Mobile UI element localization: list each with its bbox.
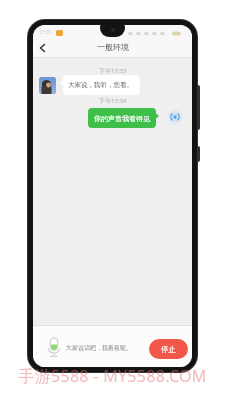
staticText: 大家说话吧，我看着呢。 <box>66 344 132 352</box>
staticText: 停止 <box>161 345 176 354</box>
staticText: 你的声音我看得见 <box>94 114 150 123</box>
button[interactable] <box>46 337 62 358</box>
button[interactable]: 你的声音我看得见 <box>88 108 159 129</box>
staticText: 17:33 <box>39 29 51 35</box>
staticText: 下午17:34 <box>99 97 127 105</box>
staticText: 手游5588 - MY5588.COM <box>18 365 207 387</box>
staticText: 一般环境 <box>97 42 129 52</box>
staticText: 大家说，我听，您看。 <box>68 81 133 89</box>
button[interactable]: 大家说，我听，您看。 <box>60 75 140 96</box>
button[interactable] <box>38 43 48 53</box>
button[interactable]: 停止 <box>149 339 188 359</box>
staticText: 下午17:33 <box>99 67 127 75</box>
